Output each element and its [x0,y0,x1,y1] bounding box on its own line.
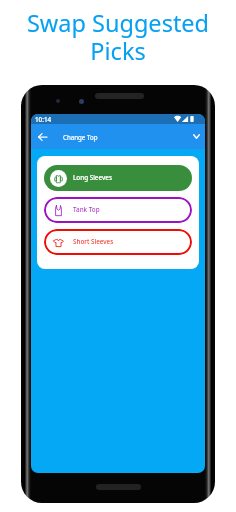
button[interactable]: Long Sleeves [44,165,192,191]
staticText: Tank Top [73,205,100,214]
button[interactable]: Short Sleeves [44,229,192,255]
staticText: Swap Suggested Picks [18,7,218,67]
staticText: 10:14 [35,115,52,124]
staticText: Short Sleeves [73,237,114,246]
button[interactable]: Tank Top [44,197,192,223]
button[interactable]: Expand menu [189,124,204,149]
staticText: Long Sleeves [73,173,112,182]
button[interactable]: Back [31,124,53,149]
staticText: Change Top [63,133,98,141]
